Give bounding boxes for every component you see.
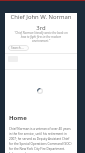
staticText: "Chief Norman literally wrote the book o…: [7, 31, 75, 43]
staticText: Chief Norman is a veteran of over 40 yea…: [9, 127, 72, 153]
staticText: Chief John W. Norman: [5, 13, 77, 21]
staticText: 3rd: [5, 24, 77, 32]
staticText: Search ...: [11, 46, 24, 50]
button[interactable]: Search ...: [8, 45, 29, 51]
staticText: Home: [9, 114, 27, 122]
